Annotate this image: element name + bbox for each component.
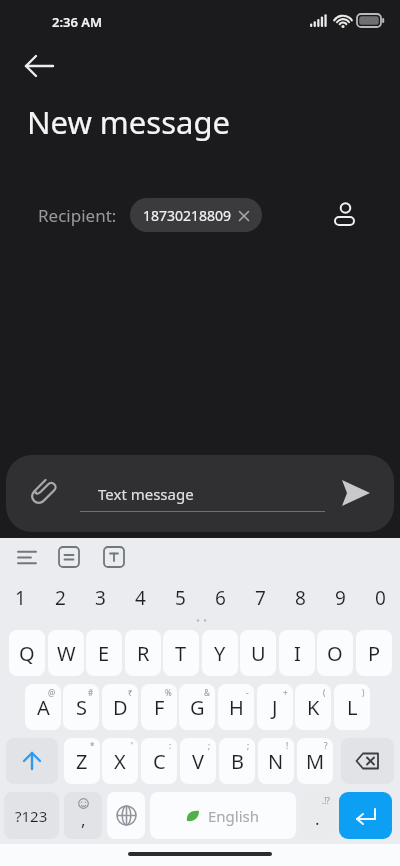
button[interactable]: K xyxy=(295,684,331,730)
button[interactable]: V xyxy=(180,738,216,784)
staticText: ; xyxy=(208,740,211,751)
staticText: % xyxy=(165,687,172,698)
staticText: .!? xyxy=(322,795,330,806)
button[interactable]: 4 xyxy=(120,580,160,616)
button[interactable]: P xyxy=(356,630,392,676)
staticText: # xyxy=(88,687,94,698)
staticText: 2:36 AM xyxy=(52,13,103,31)
staticText: ( xyxy=(323,687,326,698)
staticText: Recipient: xyxy=(38,204,117,227)
button[interactable] xyxy=(18,46,62,86)
staticText: W xyxy=(57,640,76,667)
button[interactable]: A xyxy=(25,684,61,730)
button[interactable]: D xyxy=(102,684,138,730)
staticText: M xyxy=(306,748,325,775)
staticText: ? xyxy=(324,740,328,751)
button[interactable]: , xyxy=(64,792,102,839)
staticText: : xyxy=(169,740,172,751)
staticText: ' xyxy=(131,740,133,751)
staticText: 8 xyxy=(295,585,306,611)
button[interactable]: I xyxy=(279,630,315,676)
button[interactable]: L xyxy=(334,684,370,730)
button[interactable]: E xyxy=(86,630,122,676)
staticText: New message xyxy=(27,101,230,143)
button[interactable]: S xyxy=(63,684,99,730)
button[interactable]: C xyxy=(141,738,177,784)
button[interactable]: English xyxy=(150,792,296,839)
button[interactable]: 3 xyxy=(80,580,120,616)
button[interactable] xyxy=(341,738,394,784)
button[interactable]: 9 xyxy=(320,580,360,616)
button[interactable]: 6 xyxy=(200,580,240,616)
staticText: 3 xyxy=(95,585,106,611)
staticText: N xyxy=(268,748,284,775)
staticText: ₹ xyxy=(128,687,133,698)
staticText: ) xyxy=(362,687,365,698)
staticText: L xyxy=(347,694,358,721)
button[interactable]: Y xyxy=(202,630,238,676)
staticText: G xyxy=(190,694,205,721)
button[interactable]: O xyxy=(317,630,353,676)
button[interactable]: W xyxy=(48,630,84,676)
staticText: Y xyxy=(214,640,226,667)
button[interactable] xyxy=(330,467,382,519)
button[interactable]: N xyxy=(258,738,294,784)
staticText: E xyxy=(98,640,110,667)
button[interactable]: 1 xyxy=(0,580,40,616)
button[interactable]: R xyxy=(125,630,161,676)
staticText: A xyxy=(37,694,50,721)
button[interactable] xyxy=(8,538,46,576)
button[interactable]: H xyxy=(218,684,254,730)
button[interactable]: ?123 xyxy=(4,792,59,839)
button[interactable]: 0 xyxy=(360,580,400,616)
button[interactable] xyxy=(16,467,68,519)
staticText: 2 xyxy=(55,585,66,611)
staticText: Z xyxy=(76,748,88,775)
button[interactable]: U xyxy=(240,630,276,676)
staticText: Text message xyxy=(98,484,194,504)
button[interactable] xyxy=(95,538,133,576)
button[interactable]: Z xyxy=(64,738,100,784)
staticText: @ xyxy=(48,687,56,698)
staticText: 5 xyxy=(175,585,186,611)
button[interactable]: M xyxy=(297,738,333,784)
button[interactable]: B xyxy=(219,738,255,784)
button[interactable]: 2 xyxy=(40,580,80,616)
button[interactable]: G xyxy=(179,684,215,730)
button[interactable] xyxy=(326,192,364,236)
staticText: * xyxy=(90,740,95,751)
button[interactable] xyxy=(6,738,58,784)
staticText: + xyxy=(283,687,288,698)
button[interactable]: J xyxy=(257,684,293,730)
staticText: 4 xyxy=(135,585,146,611)
staticText: X xyxy=(114,748,126,775)
staticText: P xyxy=(368,640,381,667)
staticText: 9 xyxy=(335,585,346,611)
button[interactable]: Q xyxy=(9,630,45,676)
button[interactable]: F xyxy=(141,684,177,730)
staticText: ?123 xyxy=(15,806,48,826)
staticText: Q xyxy=(19,640,35,667)
button[interactable]: X xyxy=(102,738,138,784)
button[interactable]: 18730218809 xyxy=(130,198,262,232)
button[interactable]: 5 xyxy=(160,580,200,616)
staticText: D xyxy=(113,694,128,721)
staticText: H xyxy=(229,694,244,721)
button[interactable] xyxy=(50,538,88,576)
staticText: , xyxy=(81,808,86,831)
button[interactable] xyxy=(107,792,145,839)
button[interactable]: 8 xyxy=(280,580,320,616)
button[interactable]: . xyxy=(301,792,334,839)
button[interactable]: T xyxy=(163,630,199,676)
staticText: English xyxy=(208,806,260,826)
staticText: R xyxy=(137,640,150,667)
staticText: 1 xyxy=(15,585,26,611)
staticText: 6 xyxy=(215,585,226,611)
button[interactable]: 7 xyxy=(240,580,280,616)
staticText: 7 xyxy=(255,585,266,611)
staticText: K xyxy=(307,694,320,721)
staticText: - xyxy=(246,687,249,698)
staticText: V xyxy=(192,748,204,775)
button[interactable] xyxy=(339,792,392,839)
staticText: J xyxy=(272,694,278,721)
